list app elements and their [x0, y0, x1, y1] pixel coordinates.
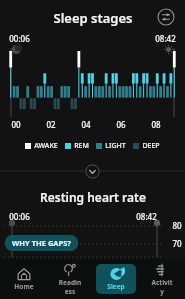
staticText: 00:06 [9, 211, 30, 222]
staticText: REM [74, 141, 89, 151]
button[interactable]: Activity [139, 259, 185, 299]
staticText: 08:42 [136, 211, 157, 222]
staticText: 00 [11, 119, 21, 130]
staticText: LIGHT [105, 141, 126, 151]
button[interactable]: Sleep [93, 259, 139, 299]
button[interactable]: Home [0, 259, 47, 299]
staticText: Sleep stages [53, 9, 133, 27]
staticText: 02 [46, 119, 56, 130]
staticText: 08:42 [155, 33, 176, 44]
button[interactable]: Readiness [47, 259, 93, 299]
staticText: 00:06 [9, 33, 30, 44]
staticText: Readiness [58, 278, 82, 296]
button[interactable]: WHY THE GAPS? [5, 235, 78, 251]
staticText: WHY THE GAPS? [12, 238, 71, 248]
staticText: Activity [150, 278, 174, 296]
staticText: 04 [81, 119, 91, 130]
staticText: 08 [151, 119, 161, 130]
staticText: Resting heart rate [40, 189, 146, 205]
staticText: DEEP [142, 141, 160, 151]
staticText: 70 [172, 238, 182, 249]
button[interactable]: Sleep settings [157, 8, 175, 26]
staticText: Sleep [107, 282, 125, 291]
staticText: AWAKE [34, 141, 58, 151]
button[interactable]: Collapse [85, 164, 100, 179]
staticText: Home [14, 282, 34, 291]
staticText: 80 [172, 220, 182, 231]
staticText: 06 [116, 119, 126, 130]
